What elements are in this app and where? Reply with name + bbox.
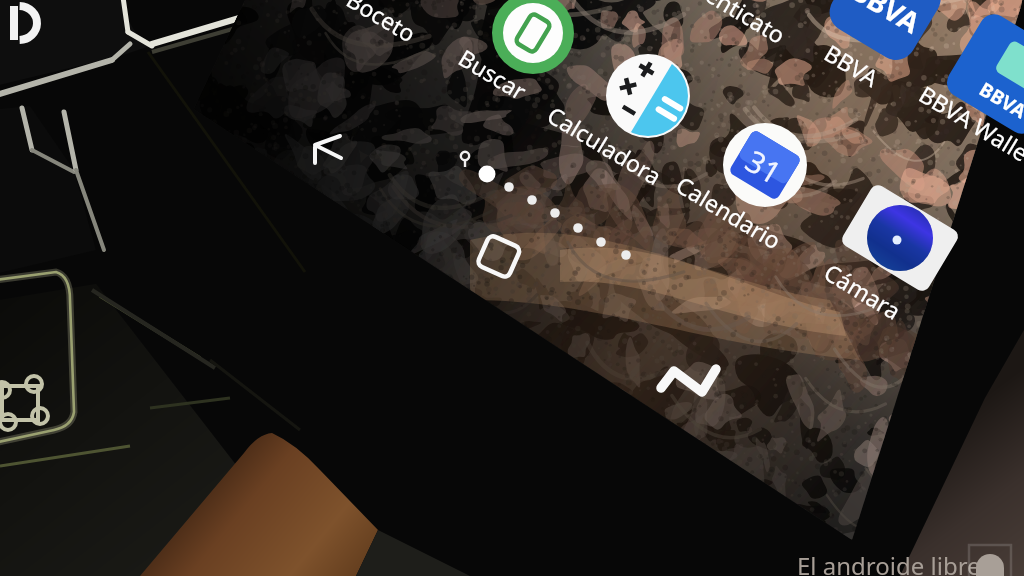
button[interactable]: Calendario bbox=[723, 123, 809, 207]
button[interactable]: Atenticato bbox=[700, 0, 792, 36]
button[interactable]: Aplicaciones recientes bbox=[476, 234, 522, 280]
button[interactable]: Calculadora bbox=[606, 55, 692, 139]
button[interactable]: Buscar bbox=[492, 0, 576, 74]
button[interactable]: BBVA bbox=[838, 0, 934, 56]
button[interactable]: Boceto bbox=[346, 0, 420, 38]
button[interactable]: Atrás bbox=[306, 128, 352, 172]
button[interactable]: Cámara bbox=[848, 200, 952, 276]
button[interactable]: BBVA Wallet bbox=[958, 28, 1024, 120]
button[interactable]: Inicio bbox=[652, 358, 728, 402]
